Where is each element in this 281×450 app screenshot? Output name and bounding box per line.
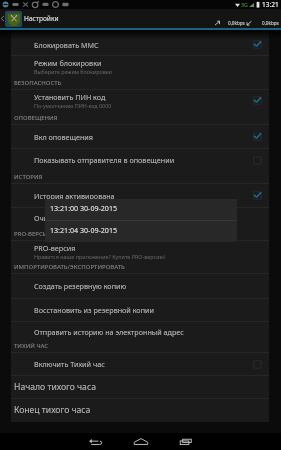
staticText: PRO-ВЕРСИЯ — [14, 230, 52, 238]
staticText: БЕЗОПАСНОСТЬ — [14, 79, 62, 87]
button[interactable]: Вкл оповещения — [11, 125, 269, 148]
staticText: Показывать отправителя в оповещении — [34, 155, 175, 165]
button[interactable]: Блокировать ММС — [11, 34, 269, 55]
staticText: ОПОВЕЩЕНИЯ — [14, 114, 58, 122]
staticText: 13:21:00 30-09-2015 — [50, 203, 118, 213]
button[interactable]: Установить ПИН код — [11, 90, 269, 111]
staticText: ТИХИЙ ЧАС — [14, 342, 49, 350]
button[interactable]: Начало тихого часа — [11, 376, 269, 398]
staticText: Создать резервную копию — [34, 281, 127, 291]
staticText: Восстановить из резервной копии — [34, 305, 154, 315]
button[interactable]: 13:21:00 30-09-2015 — [45, 199, 237, 220]
staticText: Выберите режим блокировки — [34, 68, 112, 75]
staticText: Конец тихого часа — [14, 404, 91, 416]
staticText: История активирована — [34, 191, 115, 201]
staticText: 13:21 — [262, 0, 279, 9]
button[interactable]: Показывать отправителя в оповещении — [11, 149, 269, 171]
staticText: Включить Тихий час — [34, 359, 105, 369]
button[interactable]: Home — [123, 433, 159, 450]
staticText: 3G — [241, 1, 248, 8]
button[interactable]: Восстановить из резервной копии — [11, 299, 269, 321]
button[interactable]: Recent apps — [168, 433, 204, 450]
button[interactable]: История активирована — [11, 184, 269, 207]
staticText: По-умолчанию ПИН-код 0000 — [34, 102, 112, 109]
staticText: ИМПОРТИРОВАТЬ/ЭКСПОРТИРОВАТЬ — [14, 263, 125, 271]
button[interactable]: Включить Тихий час — [11, 353, 269, 375]
button[interactable]: Очистить историю — [11, 208, 269, 228]
button[interactable]: Создать резервную копию — [11, 274, 269, 298]
staticText: 0,0kbps — [228, 20, 245, 26]
button[interactable]: Конец тихого часа — [11, 399, 269, 421]
staticText: Режим блокировки — [34, 58, 102, 68]
button[interactable]: Back — [77, 433, 113, 450]
staticText: Установить ПИН код — [34, 92, 106, 102]
button[interactable]: PRO-версия — [11, 241, 269, 261]
button[interactable]: Отправить историю на электронный адрес — [11, 322, 269, 342]
staticText: Вкл оповещения — [34, 132, 93, 142]
button[interactable]: Режим блокировки — [11, 56, 269, 77]
other: Up — [0, 9, 5, 28]
staticText: 13:21:04 30-09-2015 — [50, 225, 118, 235]
staticText: PRO-версия — [34, 243, 76, 253]
staticText: Блокировать ММС — [34, 40, 99, 50]
staticText: Очистить историю — [34, 213, 99, 223]
button[interactable]: 13:21:04 30-09-2015 — [45, 221, 237, 242]
staticText: Отправить историю на электронный адрес — [34, 327, 184, 337]
staticText: Настройки — [24, 14, 59, 23]
button[interactable]: App icon — [5, 11, 22, 27]
staticText: ИСТОРИЯ — [14, 173, 43, 181]
staticText: Нравится наше приложение? Купите PRO-вер… — [34, 253, 166, 260]
staticText: Начало тихого часа — [14, 381, 96, 393]
staticText: 0,0kbps — [262, 20, 279, 26]
